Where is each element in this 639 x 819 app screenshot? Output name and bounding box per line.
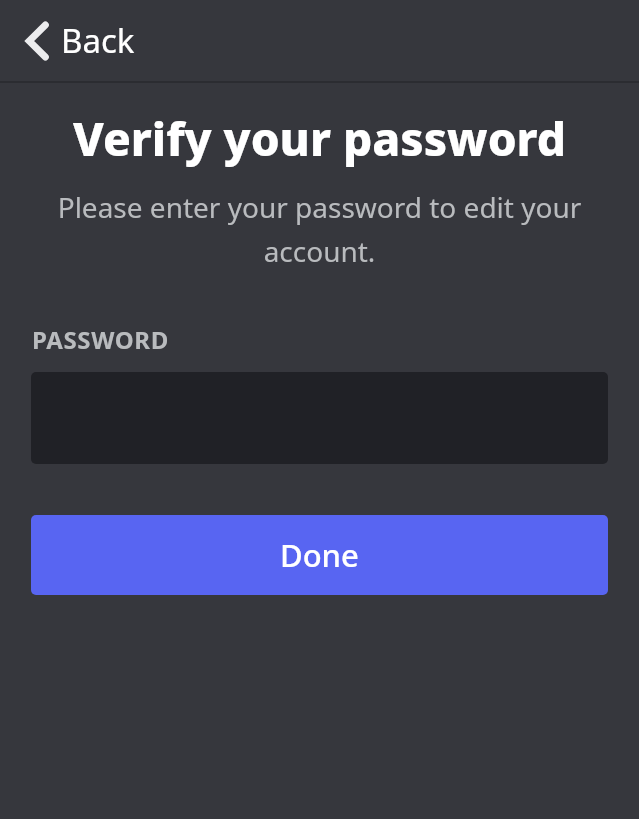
staticText: PASSWORD (32, 323, 169, 356)
button[interactable]: Back (16, 12, 149, 69)
button[interactable]: Done (31, 515, 608, 595)
staticText: Please enter your password to edit your … (32, 188, 607, 270)
staticText: Verify your password (70, 107, 569, 170)
staticText: Back (61, 18, 135, 63)
staticText: Done (280, 534, 359, 576)
